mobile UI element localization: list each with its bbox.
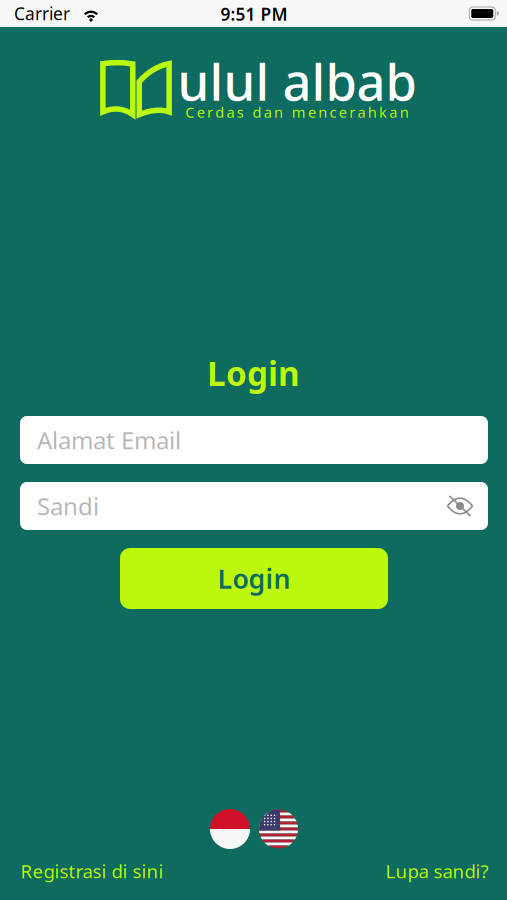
button[interactable]: English — [259, 809, 298, 848]
button[interactable]: Registrasi di sini — [20, 855, 163, 887]
button[interactable]: Tampilkan sandi — [445, 493, 475, 519]
staticText: Carrier — [14, 2, 70, 25]
staticText: Login — [217, 561, 290, 596]
button[interactable]: Sandi — [20, 482, 488, 530]
button[interactable]: Login — [120, 548, 388, 609]
staticText: Sandi — [37, 490, 99, 522]
button[interactable]: Lupa sandi? — [385, 855, 488, 887]
staticText: Cerdas dan mencerahkan — [185, 102, 409, 122]
staticText: Lupa sandi? — [385, 859, 488, 883]
staticText: Registrasi di sini — [20, 859, 163, 883]
staticText: Alamat Email — [37, 424, 181, 456]
staticText: 9:51 PM — [220, 2, 287, 25]
staticText: Login — [207, 351, 300, 395]
button[interactable]: Alamat Email — [20, 416, 488, 464]
button[interactable]: Bahasa Indonesia — [210, 809, 250, 849]
staticText: ulul albab — [177, 47, 416, 115]
